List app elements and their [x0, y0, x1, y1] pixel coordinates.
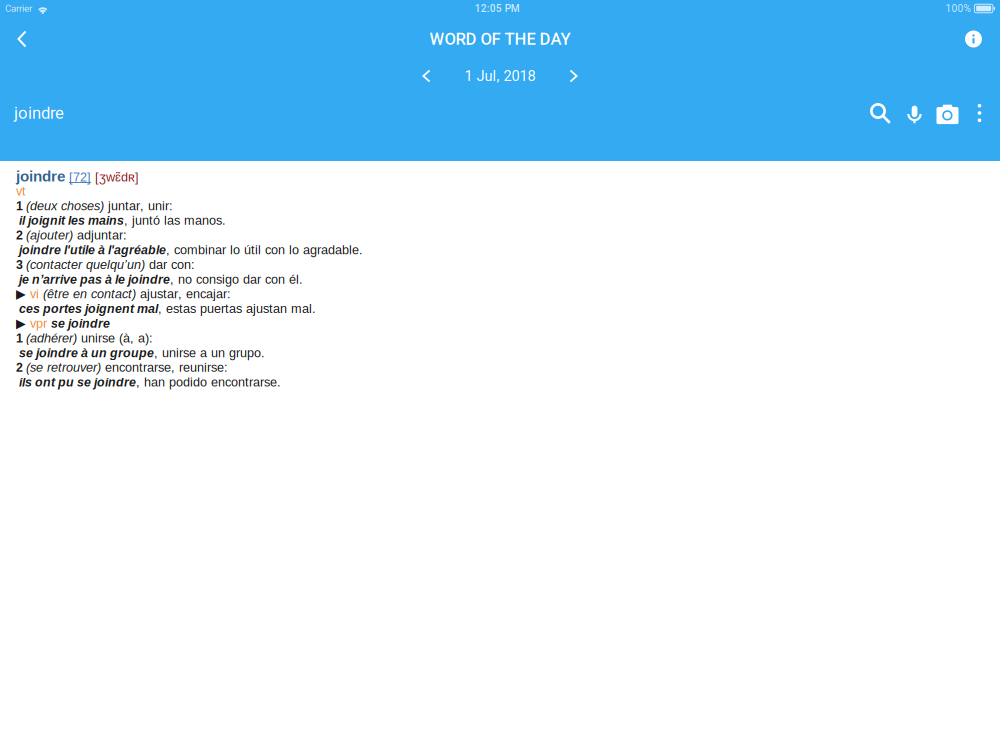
staticText: vt — [16, 184, 26, 198]
staticText: ▶ vi (être en contact) ajustar, encajar: — [16, 287, 231, 301]
staticText: Carrier — [5, 3, 32, 14]
staticText: 2 (ajouter) adjuntar: — [16, 228, 127, 242]
staticText: ils ont pu se joindre, han podido encont… — [16, 375, 281, 389]
staticText: joindre l'utile à l'agréable, combinar l… — [16, 243, 363, 257]
button[interactable]: More options — [964, 91, 995, 135]
staticText: se joindre à un groupe, unirse a un grup… — [16, 346, 265, 360]
staticText: 1 (deux choses) juntar, unir: — [16, 199, 173, 213]
staticText: il joignit les mains, juntó las manos. — [16, 214, 226, 227]
button[interactable]: Search — [864, 91, 898, 135]
button[interactable]: Next day — [552, 61, 594, 91]
staticText: 1 (adhérer) unirse (à, a): — [16, 331, 153, 345]
staticText: 12:05 PM — [475, 3, 520, 14]
staticText: ▶ vpr se joindre — [16, 316, 110, 331]
button[interactable]: Back — [0, 18, 44, 60]
staticText: je n’arrive pas à le joindre, no consigo… — [16, 272, 303, 286]
staticText: joindre [72] [ʒwɛ̃dʀ] — [16, 168, 139, 185]
staticText: 1 Jul, 2018 — [464, 67, 535, 85]
button[interactable]: Information — [947, 18, 1000, 60]
staticText: joindre — [14, 103, 64, 123]
button[interactable]: Camera search — [931, 91, 964, 135]
button[interactable]: Previous day — [405, 61, 447, 91]
staticText: 3 (contacter quelqu’un) dar con: — [16, 258, 195, 271]
staticText: ces portes joignent mal, estas puertas a… — [16, 302, 316, 316]
staticText: 100% — [945, 3, 970, 14]
button[interactable]: Voice search — [898, 91, 931, 135]
staticText: WORD OF THE DAY — [429, 29, 570, 49]
staticText: 2 (se retrouver) encontrarse, reunirse: — [16, 361, 228, 374]
